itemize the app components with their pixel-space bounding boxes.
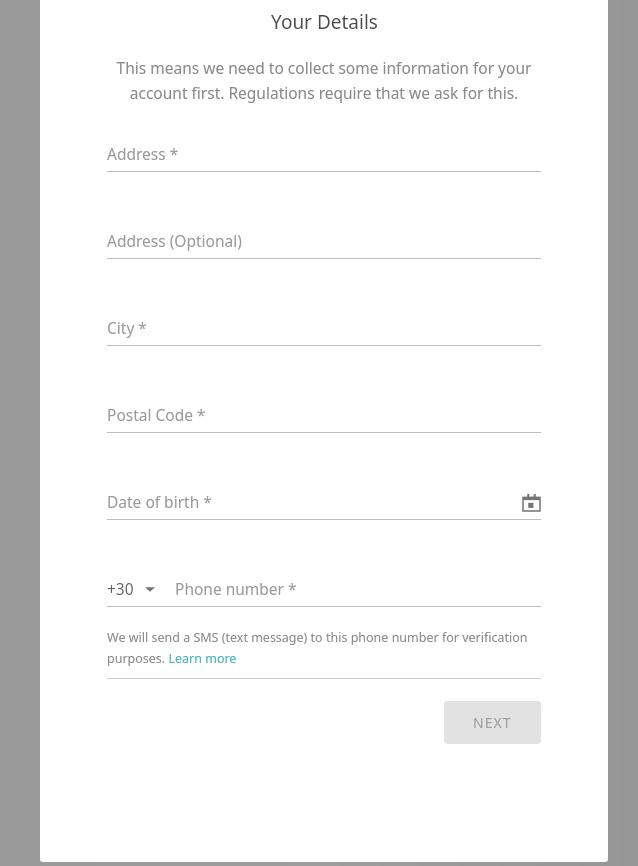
button[interactable]: Open calendar: [521, 492, 541, 512]
button[interactable]: NEXT: [444, 701, 541, 744]
button[interactable]: Postal Code *: [107, 404, 541, 433]
button[interactable]: We will send a SMS (text message) to thi…: [107, 629, 541, 666]
staticText: Postal Code *: [107, 404, 206, 425]
staticText: City *: [107, 317, 147, 338]
staticText: Your Details: [271, 9, 378, 35]
button[interactable]: Date of birth *: [107, 491, 541, 520]
staticText: +30: [107, 578, 134, 599]
staticText: Address *: [107, 143, 179, 164]
button[interactable]: +30: [107, 578, 155, 599]
button[interactable]: City *: [107, 317, 541, 346]
button[interactable]: Address (Optional): [107, 230, 541, 259]
staticText: NEXT: [473, 713, 512, 732]
staticText: Date of birth *: [107, 491, 212, 512]
button[interactable]: Address *: [107, 143, 541, 172]
button[interactable]: Phone number *: [175, 578, 541, 599]
staticText: This means we need to collect some infor…: [98, 57, 550, 103]
staticText: Phone number *: [175, 578, 297, 599]
staticText: Address (Optional): [107, 230, 242, 251]
